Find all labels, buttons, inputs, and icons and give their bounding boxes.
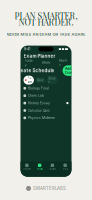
staticText: History Essay: [28, 101, 50, 105]
staticText: NOT HARDER.: [18, 16, 73, 28]
staticText: Study: [48, 76, 56, 84]
staticText: Today: [24, 58, 33, 67]
staticText: 9:41: [24, 47, 30, 51]
staticText: Physics Midterm: [28, 116, 55, 120]
button[interactable]: Add Exam: [63, 65, 76, 76]
button[interactable]: Quiz: [35, 77, 45, 83]
staticText: Chem Lab: [28, 94, 44, 98]
button[interactable]: Home: [20, 162, 33, 173]
staticText: Exam Planner: [23, 53, 55, 59]
staticText: Add Exam: [65, 67, 74, 74]
button[interactable]: Exam: [23, 76, 34, 84]
button[interactable]: Chem Lab: [20, 92, 71, 99]
button[interactable]: Study: [47, 76, 58, 84]
button[interactable]: You: [59, 162, 72, 173]
staticText: PLAN SMARTER,: [14, 10, 77, 21]
staticText: Calculus Quiz: [28, 109, 50, 112]
button[interactable]: Plan: [33, 162, 46, 173]
button[interactable]: Physics Midterm: [20, 114, 71, 122]
staticText: SMARTERLABS: [33, 186, 66, 191]
staticText: NEVER MISS AN EXAM OR TASK AGAIN.: [6, 32, 85, 37]
staticText: Exam: [27, 76, 32, 84]
staticText: Plan: [37, 167, 42, 171]
button[interactable]: History Essay: [20, 99, 71, 107]
staticText: Quiz: [37, 78, 44, 82]
staticText: You: [63, 167, 68, 171]
staticText: Biology Final: [28, 86, 49, 90]
button[interactable]: Stats: [46, 162, 59, 173]
staticText: Week: [41, 60, 50, 65]
button[interactable]: Calculus Quiz: [20, 107, 71, 114]
staticText: Month: [58, 58, 67, 67]
staticText: Create Schedule: [16, 68, 55, 73]
button[interactable]: Biology Final: [20, 85, 71, 92]
staticText: Stats: [49, 167, 55, 171]
staticText: Home: [23, 167, 30, 171]
